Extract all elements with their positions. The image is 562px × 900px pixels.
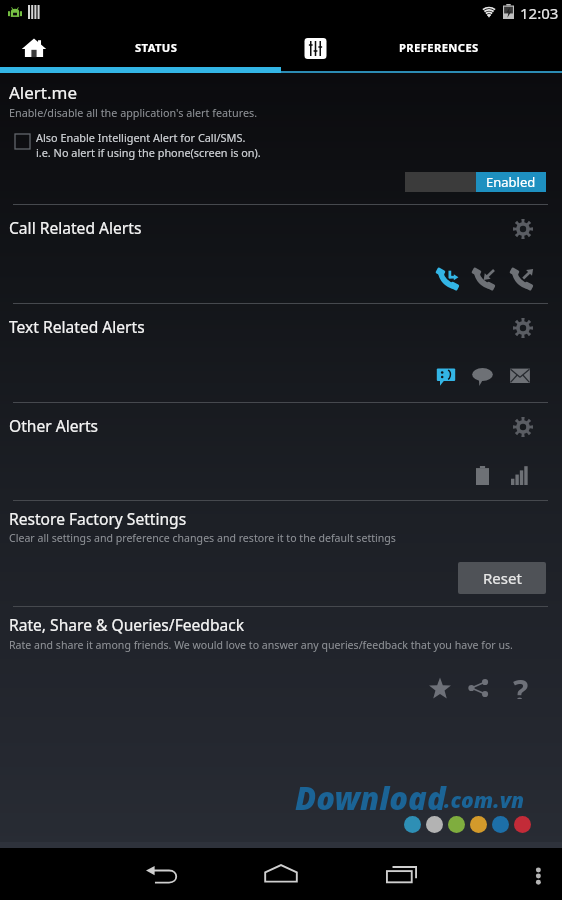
staticText: i.e. No alert if using the phone(screen … <box>36 145 261 160</box>
staticText: Restore Factory Settings <box>9 508 187 529</box>
staticText: Call Related Alerts <box>9 217 142 238</box>
staticText: Rate and share it among friends. We woul… <box>9 638 513 652</box>
button[interactable]: Rate <box>424 673 455 703</box>
button[interactable]: Home <box>259 857 303 893</box>
staticText: .com.vn <box>444 786 525 815</box>
button[interactable]: Back <box>140 857 184 893</box>
staticText: Alert.me <box>9 81 78 104</box>
button[interactable]: Settings <box>508 311 536 339</box>
button[interactable]: Recent apps <box>382 857 426 893</box>
button[interactable]: Email alert <box>509 366 531 386</box>
button[interactable]: STATUS <box>0 26 281 73</box>
button[interactable]: PREFERENCES <box>281 26 562 73</box>
button[interactable]: Settings <box>508 212 536 240</box>
button[interactable]: Settings <box>508 410 536 438</box>
button[interactable]: Chat alert <box>471 366 494 386</box>
button[interactable]: Signal alert <box>511 466 528 485</box>
staticText: Text Related Alerts <box>9 316 145 337</box>
button[interactable]: Share <box>463 673 493 703</box>
button[interactable]: Help <box>506 668 536 698</box>
staticText: Rate, Share & Queries/Feedback <box>9 614 245 635</box>
staticText: Other Alerts <box>9 415 99 436</box>
staticText: 12:03 <box>520 3 559 23</box>
button[interactable]: More options <box>524 857 554 893</box>
button[interactable]: Incoming call alert <box>472 269 494 290</box>
button[interactable]: Missed call alert <box>436 269 458 290</box>
staticText: PREFERENCES <box>399 40 479 55</box>
staticText: STATUS <box>135 40 178 55</box>
button[interactable]: Also Enable Intelligent Alert for Call/S… <box>13 130 283 160</box>
button[interactable]: Enabled <box>405 172 546 192</box>
staticText: ? <box>513 669 529 699</box>
staticText: Also Enable Intelligent Alert for Call/S… <box>36 130 246 145</box>
staticText: Download <box>295 777 446 819</box>
staticText: Enabled <box>486 173 536 191</box>
button[interactable]: Battery alert <box>476 466 489 485</box>
staticText: Reset <box>483 568 522 588</box>
button[interactable]: SMS alert <box>436 366 456 386</box>
staticText: Enable/disable all the application's ale… <box>9 105 258 120</box>
button[interactable]: Outgoing call alert <box>510 269 532 290</box>
staticText: Clear all settings and preference change… <box>9 531 396 545</box>
button[interactable]: Reset <box>458 562 546 594</box>
